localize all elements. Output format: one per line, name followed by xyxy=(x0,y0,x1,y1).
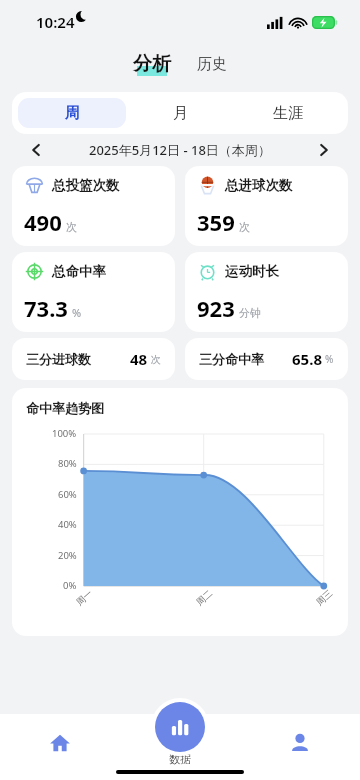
staticText: 次 xyxy=(151,353,161,366)
staticText: 80% xyxy=(58,457,77,470)
staticText: % xyxy=(325,352,334,366)
staticText: 总命中率 xyxy=(52,263,106,280)
staticText: 命中率趋势图 xyxy=(26,400,104,416)
button[interactable]: 三分命中率 xyxy=(185,338,348,380)
button[interactable]: 三分进球数 xyxy=(12,338,175,380)
staticText: 生涯 xyxy=(273,104,303,123)
staticText: 分钟 xyxy=(239,306,261,320)
button[interactable]: Next week xyxy=(310,136,338,164)
staticText: 0% xyxy=(63,579,77,592)
staticText: 40% xyxy=(58,518,77,531)
button[interactable]: 分析 xyxy=(129,52,175,76)
staticText: % xyxy=(72,305,82,320)
button[interactable]: 运动时长 xyxy=(185,252,348,332)
staticText: 数据 xyxy=(169,752,191,766)
staticText: 历史 xyxy=(197,55,227,74)
button[interactable]: 月 xyxy=(126,98,234,128)
staticText: 次 xyxy=(66,220,77,234)
button[interactable]: Profile xyxy=(240,720,360,766)
staticText: 923 xyxy=(197,293,235,323)
staticText: 总进球次数 xyxy=(225,177,293,194)
staticText: 运动时长 xyxy=(225,263,279,280)
staticText: 周三 xyxy=(314,587,334,608)
staticText: 60% xyxy=(58,488,77,501)
staticText: 2025年5月12日 - 18日（本周） xyxy=(89,141,271,159)
staticText: 分析 xyxy=(133,52,171,76)
staticText: 月 xyxy=(173,104,188,123)
button[interactable]: 总命中率 xyxy=(12,252,175,332)
staticText: 三分命中率 xyxy=(199,351,264,367)
button[interactable]: 周 xyxy=(18,98,126,128)
staticText: 三分进球数 xyxy=(26,351,91,367)
button[interactable]: Previous week xyxy=(22,136,50,164)
button[interactable]: 生涯 xyxy=(234,98,342,128)
staticText: 周二 xyxy=(194,587,214,608)
staticText: 490 xyxy=(24,207,62,237)
staticText: 周一 xyxy=(74,587,94,608)
staticText: 次 xyxy=(239,220,250,234)
button[interactable]: 历史 xyxy=(193,55,231,74)
button[interactable]: 总进球次数 xyxy=(185,166,348,246)
staticText: 总投篮次数 xyxy=(52,177,120,194)
staticText: 10:24 xyxy=(36,12,75,32)
staticText: 65.8 xyxy=(292,349,322,369)
staticText: 100% xyxy=(52,427,77,440)
button[interactable]: Home xyxy=(0,720,120,766)
staticText: 73.3 xyxy=(24,293,68,323)
staticText: 359 xyxy=(197,207,235,237)
staticText: 周 xyxy=(65,104,80,123)
button[interactable]: Data xyxy=(155,702,205,752)
button[interactable]: 数据 xyxy=(120,720,240,766)
staticText: 20% xyxy=(58,549,77,562)
staticText: 48 xyxy=(130,349,148,369)
button[interactable]: 总投篮次数 xyxy=(12,166,175,246)
